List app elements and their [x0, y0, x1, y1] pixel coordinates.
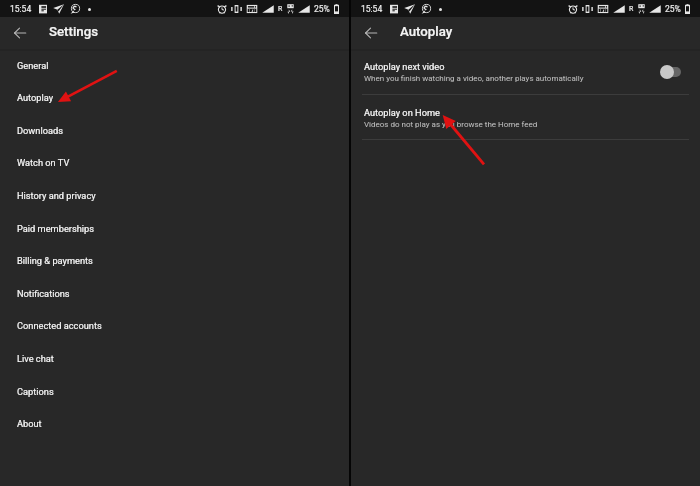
button[interactable]: Autoplay on Home	[351, 99, 700, 136]
button[interactable]: General	[0, 49, 349, 82]
staticText: 15:54	[10, 4, 32, 14]
button[interactable]: Autoplay	[0, 81, 349, 114]
staticText: Paid memberships	[17, 223, 95, 234]
button[interactable]: Billing & payments	[0, 244, 349, 277]
staticText: Autoplay on Home	[364, 107, 440, 118]
staticText: General	[17, 60, 49, 71]
button[interactable]: Downloads	[0, 114, 349, 147]
staticText: Settings	[49, 24, 99, 40]
staticText: R	[278, 5, 283, 13]
button[interactable]: Back	[7, 20, 32, 45]
button[interactable]: Live chat	[0, 342, 349, 375]
staticText: About	[17, 418, 42, 429]
staticText: 25%	[314, 4, 330, 14]
button[interactable]: Paid memberships	[0, 212, 349, 245]
staticText: Autoplay next video	[364, 61, 445, 72]
button[interactable]: Back	[358, 20, 383, 45]
staticText: 25%	[665, 4, 681, 14]
button[interactable]: Captions	[0, 375, 349, 408]
staticText: R	[629, 5, 634, 13]
staticText: Autoplay	[400, 24, 453, 40]
button[interactable]: Watch on TV	[0, 146, 349, 179]
staticText: Notifications	[17, 288, 70, 299]
staticText: Autoplay	[17, 92, 54, 103]
staticText: History and privacy	[17, 190, 96, 201]
button[interactable]: Connected accounts	[0, 309, 349, 342]
staticText: Videos do not play as you browse the Hom…	[364, 120, 538, 129]
button[interactable]: Autoplay next video	[351, 53, 700, 90]
staticText: Live chat	[17, 353, 54, 364]
button[interactable]: History and privacy	[0, 179, 349, 212]
staticText: Billing & payments	[17, 255, 93, 266]
staticText: Captions	[17, 386, 54, 397]
staticText: 15:54	[361, 4, 383, 14]
staticText: When you finish watching a video, anothe…	[364, 74, 584, 83]
button[interactable]: About	[0, 407, 349, 440]
staticText: Downloads	[17, 125, 63, 136]
button[interactable]: Notifications	[0, 277, 349, 310]
staticText: Watch on TV	[17, 157, 70, 168]
button[interactable]: Toggle autoplay next video	[660, 64, 688, 80]
staticText: Connected accounts	[17, 320, 102, 331]
